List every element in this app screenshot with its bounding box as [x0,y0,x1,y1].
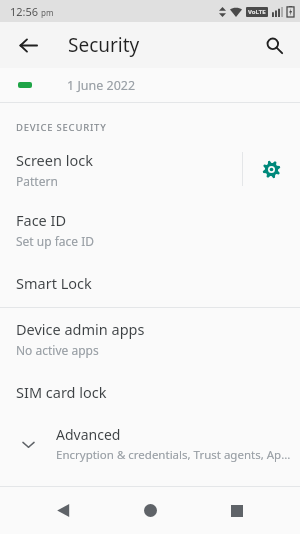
staticText: Device admin apps [16,319,145,339]
button[interactable]: Back [10,27,46,63]
button[interactable]: Recent apps [213,487,261,534]
staticText: VoLTE [248,8,266,16]
staticText: Set up face ID [16,233,95,249]
button[interactable]: Smart Lock [0,259,300,307]
staticText: Security [68,32,140,58]
button[interactable]: Search [256,27,292,63]
staticText: Smart Lock [16,273,92,293]
staticText: No active apps [16,342,99,358]
button[interactable]: Back [39,487,87,534]
staticText: Face ID [16,210,67,230]
staticText: 12:56 [10,4,39,19]
button[interactable]: Face ID [0,199,300,259]
staticText: 1 June 2022 [67,77,136,94]
staticText: DEVICE SECURITY [16,121,107,134]
button[interactable]: Screen lock [0,139,242,199]
staticText: SIM card lock [16,382,107,402]
staticText: Screen lock [16,150,93,170]
staticText: Pattern [16,173,58,189]
button[interactable]: Device admin apps [0,308,300,368]
button[interactable]: 1 June 2022 [0,68,300,102]
button[interactable]: SIM card lock [0,368,300,416]
button[interactable]: Advanced [0,416,300,472]
button[interactable]: Screen lock settings [243,139,300,199]
staticText: Advanced [56,425,121,444]
button[interactable]: Home [126,487,174,534]
staticText: pm [41,7,54,18]
staticText: Encryption & credentials, Trust agents, … [56,447,292,463]
